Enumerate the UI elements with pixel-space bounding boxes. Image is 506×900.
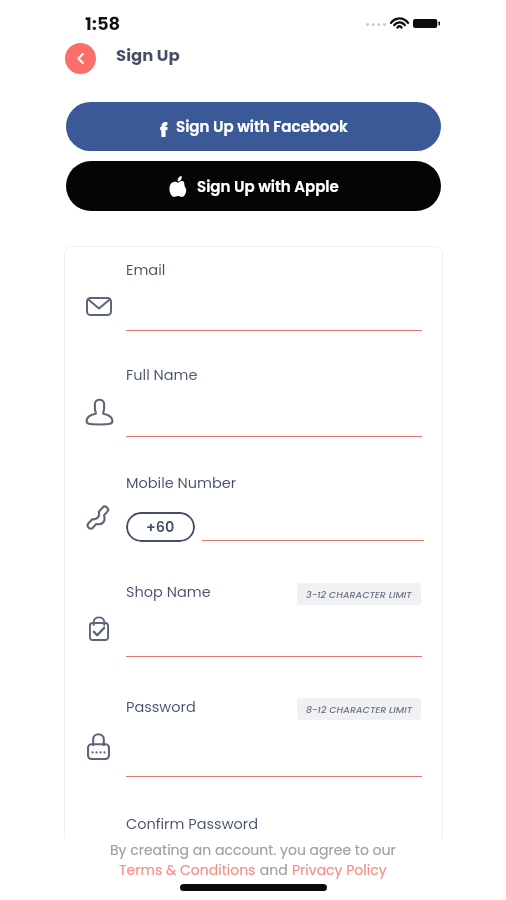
- staticText: Confirm Password: [126, 814, 259, 834]
- staticText: Shop Name: [126, 582, 211, 602]
- button[interactable]: Password: [80, 687, 425, 765]
- staticText: Password: [126, 697, 196, 717]
- button[interactable]: Terms & Conditions: [119, 860, 256, 880]
- button[interactable]: +60: [126, 512, 195, 542]
- button[interactable]: Privacy Policy: [292, 860, 387, 880]
- staticText: Sign Up with Facebook: [176, 116, 348, 137]
- staticText: 8-12 CHARACTER LIMIT: [306, 703, 413, 716]
- staticText: +60: [146, 517, 175, 537]
- button[interactable]: Sign Up with Apple: [66, 161, 441, 211]
- staticText: Sign Up with Apple: [197, 176, 339, 197]
- staticText: Mobile Number: [126, 473, 237, 493]
- button[interactable]: Email: [80, 250, 425, 328]
- staticText: 1:58: [85, 11, 121, 36]
- staticText: By creating an account. you agree to our: [110, 840, 396, 860]
- button[interactable]: Full Name: [80, 355, 425, 433]
- button[interactable]: Mobile Number: [80, 463, 425, 541]
- button[interactable]: f: [66, 102, 441, 151]
- button[interactable]: Confirm Password: [80, 804, 425, 844]
- staticText: Full Name: [126, 365, 198, 385]
- button[interactable]: Back: [65, 43, 96, 74]
- staticText: Email: [126, 260, 166, 280]
- staticText: Sign Up: [116, 44, 180, 67]
- staticText: 3-12 CHARACTER LIMIT: [306, 588, 412, 601]
- staticText: and: [256, 860, 292, 880]
- button[interactable]: Shop Name: [80, 572, 425, 650]
- staticText: f: [160, 117, 168, 137]
